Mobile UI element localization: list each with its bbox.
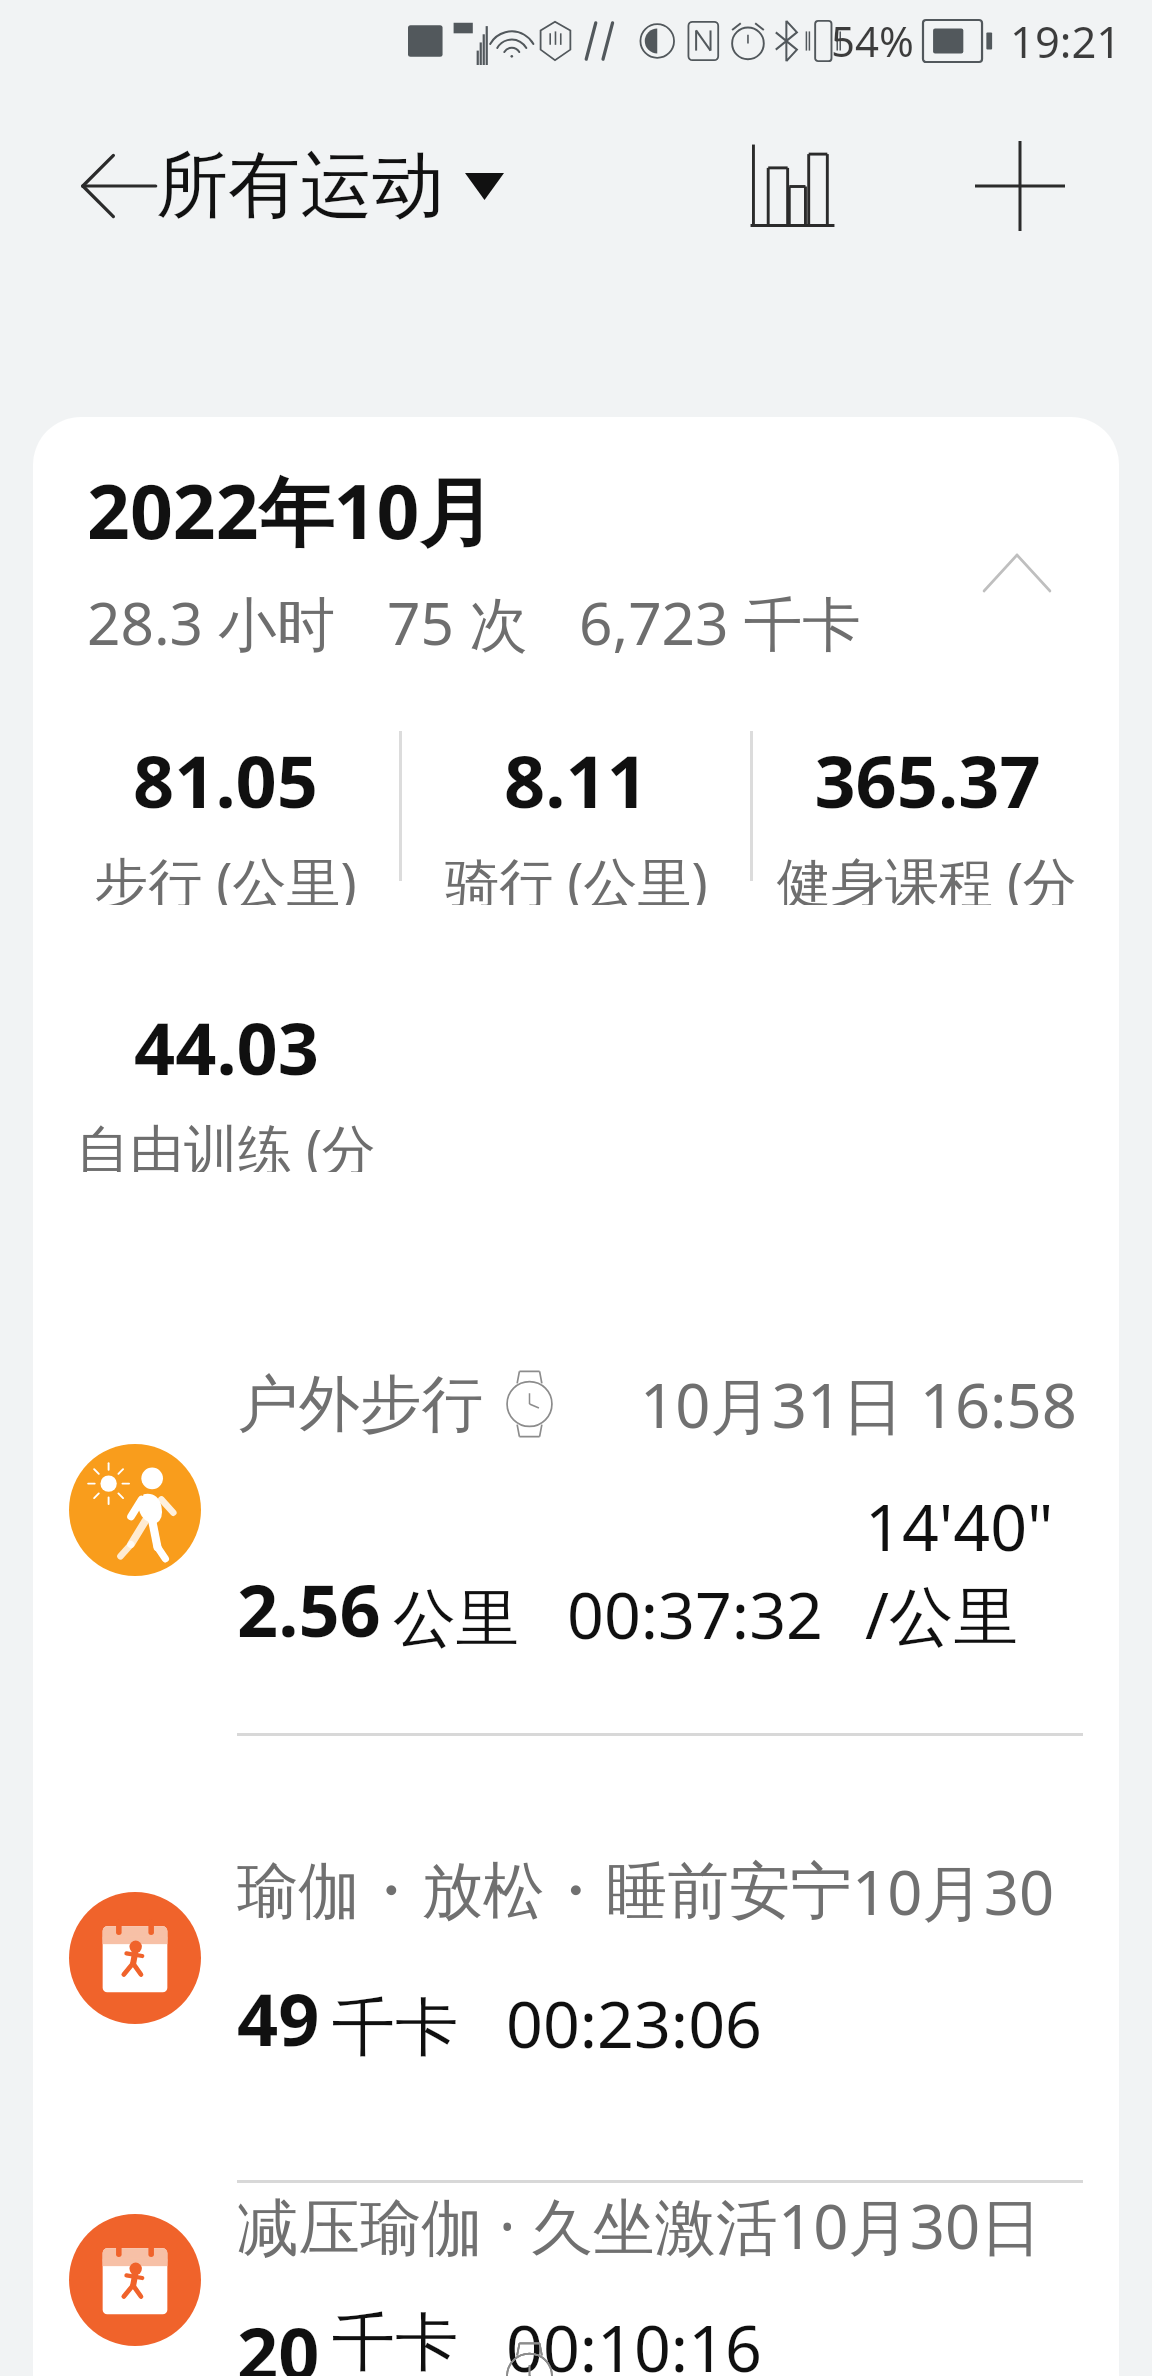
staticText: 75 次 [387,582,528,662]
staticText: 10月30日 20:31 [852,1849,1077,1933]
staticText: 49 [237,1969,320,2067]
staticText: 19:21 [1010,11,1122,70]
staticText: 瑜伽・放松・睡前安宁 [237,1853,852,1930]
staticText: 20 [237,2303,320,2376]
other: 收起 [957,513,1077,633]
staticText: 54% [831,12,914,69]
button[interactable]: 户外步行 [33,1286,1119,1733]
button[interactable]: 2022年10月 [33,459,1119,662]
staticText: 公里 [393,1579,519,1658]
staticText: 千卡 [332,2303,458,2376]
staticText: 骑行 (公里) [445,844,708,905]
button[interactable]: 添加运动 [936,102,1104,270]
staticText: 00:23:06 [506,1979,762,2067]
staticText: 2022年10月 [87,459,495,561]
button[interactable]: 所有运动 [156,141,504,232]
staticText: 81.05 [133,731,318,829]
staticText: 8.11 [504,731,648,829]
staticText: 所有运动 [156,141,444,232]
staticText: 6,723 千卡 [579,582,861,662]
button[interactable]: 统计图表 [714,108,870,264]
button[interactable]: 瑜伽・放松・睡前安宁 [33,1736,1119,2180]
button[interactable]: 返回 [36,105,198,267]
staticText: 步行 (公里) [94,844,357,905]
staticText: 00:10:16 [506,2303,762,2376]
staticText: 00:37:32 [567,1570,823,1658]
staticText: 10月30日 20:20 [778,2183,1077,2267]
staticText: 44.03 [134,998,319,1096]
staticText: 自由训练 (分钟) [51,1111,401,1172]
staticText: 千卡 [332,1988,458,2067]
staticText: 户外步行 [237,1366,483,1443]
staticText: 2.56 [237,1560,381,1658]
staticText: 14'40"/公里 [865,1482,1077,1658]
staticText: 健身课程 (分钟) [753,844,1101,905]
staticText: 10月31日 16:58 [640,1362,1077,1446]
staticText: 减压瑜伽 · 久坐激活 [237,2183,778,2267]
button[interactable]: 减压瑜伽 · 久坐激活 [33,2183,1119,2376]
staticText: 365.37 [814,731,1041,829]
staticText: 28.3 小时 [87,582,336,662]
